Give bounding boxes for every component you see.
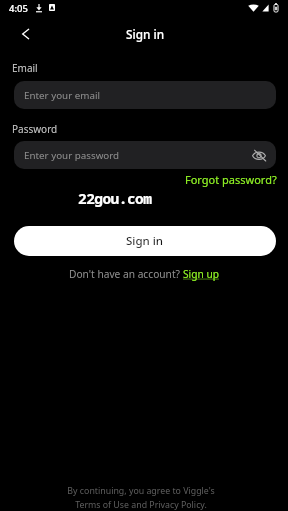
button[interactable]: Sign in: [14, 226, 276, 256]
button[interactable]: Enter your email: [14, 81, 276, 109]
staticText: Enter your email: [24, 89, 100, 102]
staticText: Sign in: [126, 26, 165, 42]
staticText: By continuing, you agree to Viggle's Ter…: [0, 485, 285, 510]
staticText: 22gou.com: [78, 188, 152, 208]
staticText: 4:05: [9, 2, 28, 15]
staticText: Enter your password: [24, 149, 120, 162]
button[interactable]: Enter your password: [14, 141, 276, 169]
staticText: Don't have an account?: [69, 267, 183, 281]
staticText: Sign in: [126, 233, 164, 249]
staticText: Password: [12, 122, 58, 136]
button[interactable]: Show password: [250, 146, 268, 164]
button[interactable]: Forgot password?: [173, 170, 288, 189]
button[interactable]: Sign up: [183, 267, 219, 281]
staticText: Email: [12, 61, 38, 75]
staticText: Forgot password?: [185, 172, 277, 187]
staticText: Sign up: [183, 267, 219, 281]
button[interactable]: Back: [12, 21, 38, 47]
